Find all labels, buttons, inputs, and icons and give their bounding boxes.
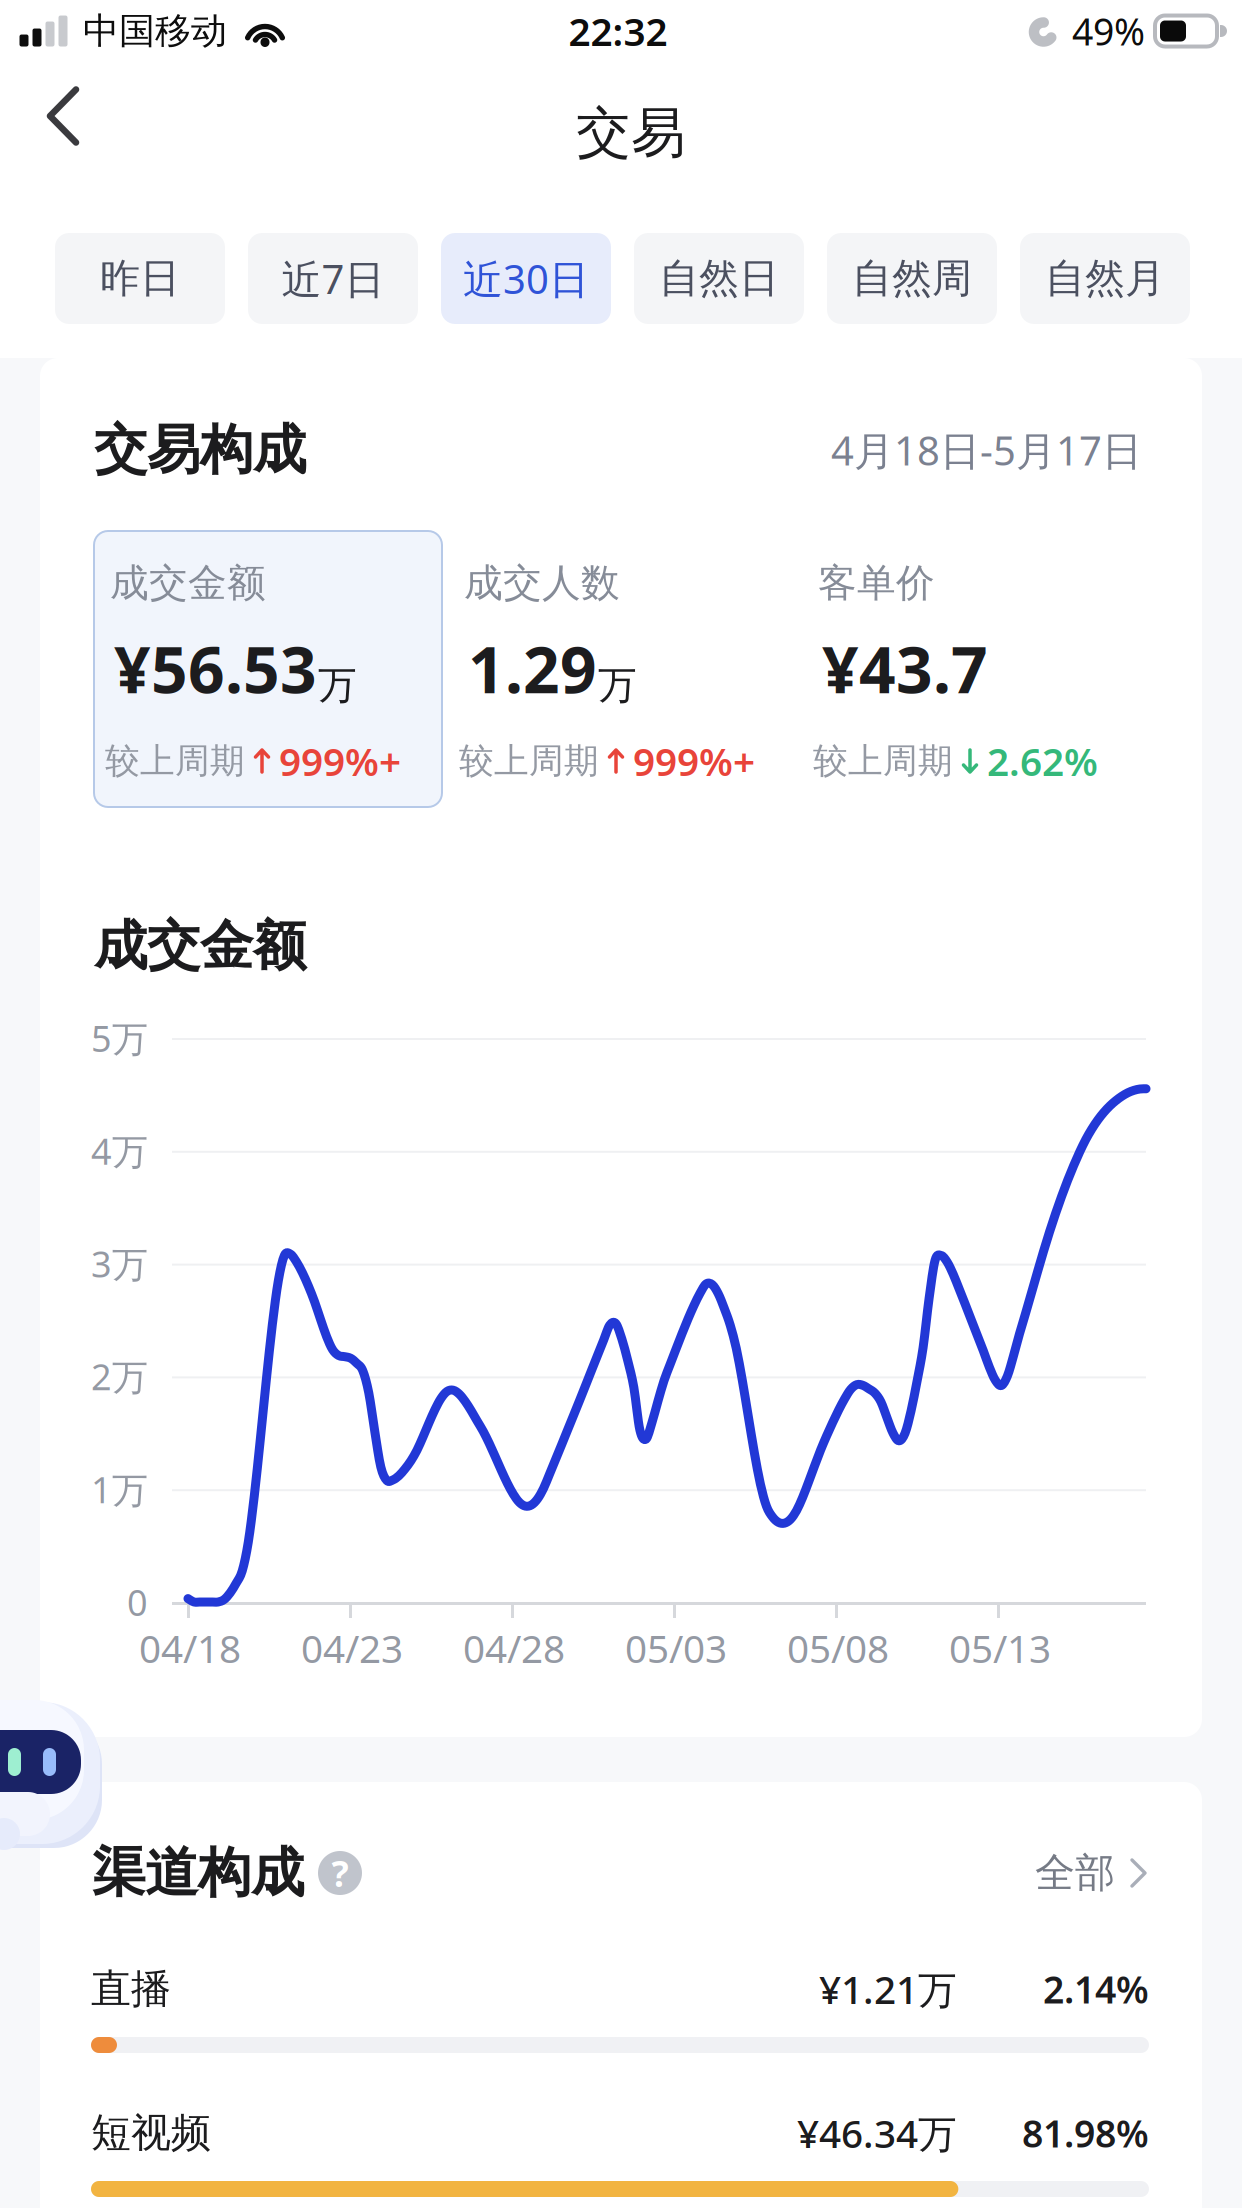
staticText: ¥46.34万	[797, 2107, 957, 2159]
button[interactable]: 自然日	[634, 233, 804, 324]
button[interactable]: Assistant	[0, 1698, 106, 1852]
staticText: 自然周	[852, 254, 972, 303]
staticText: ?	[331, 1849, 348, 1897]
staticText: 全部	[1035, 1848, 1115, 1897]
button[interactable]: Back	[0, 62, 120, 170]
button[interactable]: 客单价	[802, 531, 1150, 807]
button[interactable]: 近30日	[441, 233, 611, 324]
staticText: ¥56.53	[114, 626, 317, 711]
staticText: ¥43.7	[822, 626, 988, 711]
staticText: 5万	[91, 1014, 148, 1062]
staticText: 中国移动	[83, 9, 227, 53]
button[interactable]: Help	[318, 1851, 362, 1895]
staticText: 04/28	[463, 1622, 565, 1674]
button[interactable]: 成交金额	[94, 531, 442, 807]
staticText: 成交金额	[94, 913, 306, 979]
staticText: 04/23	[301, 1622, 403, 1674]
staticText: 直播	[91, 1964, 171, 2013]
button[interactable]: 自然周	[827, 233, 997, 324]
staticText: 1万	[91, 1465, 148, 1513]
staticText: 04/18	[139, 1622, 241, 1674]
staticText: 交易	[576, 99, 686, 166]
staticText: 自然月	[1045, 254, 1165, 303]
staticText: 05/13	[949, 1622, 1051, 1674]
staticText: 较上周期	[459, 740, 599, 782]
staticText: 4月18日-5月17日	[831, 423, 1142, 476]
button[interactable]: 自然月	[1020, 233, 1190, 324]
staticText: 49%	[1072, 6, 1145, 56]
staticText: 渠道构成	[92, 1840, 304, 1906]
staticText: 成交人数	[464, 559, 620, 607]
staticText: 2.14%	[1043, 1964, 1149, 2014]
staticText: 万	[318, 661, 357, 709]
staticText: 3万	[91, 1240, 148, 1287]
staticText: 05/03	[625, 1622, 727, 1674]
staticText: 近7日	[281, 252, 384, 305]
staticText: 万	[598, 661, 637, 709]
staticText: 较上周期	[813, 740, 953, 782]
staticText: 成交金额	[110, 559, 266, 607]
staticText: 昨日	[100, 254, 180, 303]
staticText: 近30日	[463, 252, 589, 305]
staticText: ¥1.21万	[819, 1963, 957, 2015]
staticText: 22:32	[568, 5, 667, 57]
staticText: 短视频	[91, 2108, 211, 2157]
staticText: 05/08	[787, 1622, 889, 1674]
staticText: 自然日	[659, 254, 779, 303]
staticText: 客单价	[818, 559, 935, 607]
staticText: 1.29	[468, 626, 597, 711]
button[interactable]: 近7日	[248, 233, 418, 324]
staticText: 交易构成	[94, 417, 306, 483]
staticText: 较上周期	[105, 740, 245, 782]
button[interactable]: 昨日	[55, 233, 225, 324]
staticText: 0	[127, 1578, 148, 1626]
button[interactable]: 全部	[1035, 1848, 1148, 1897]
staticText: 2万	[91, 1352, 148, 1400]
staticText: 2.62%	[987, 735, 1098, 787]
staticText: 999%+	[633, 735, 755, 787]
staticText: 4万	[91, 1127, 148, 1175]
staticText: 999%+	[279, 735, 401, 787]
staticText: 81.98%	[1022, 2108, 1149, 2158]
button[interactable]: 成交人数	[448, 531, 796, 807]
